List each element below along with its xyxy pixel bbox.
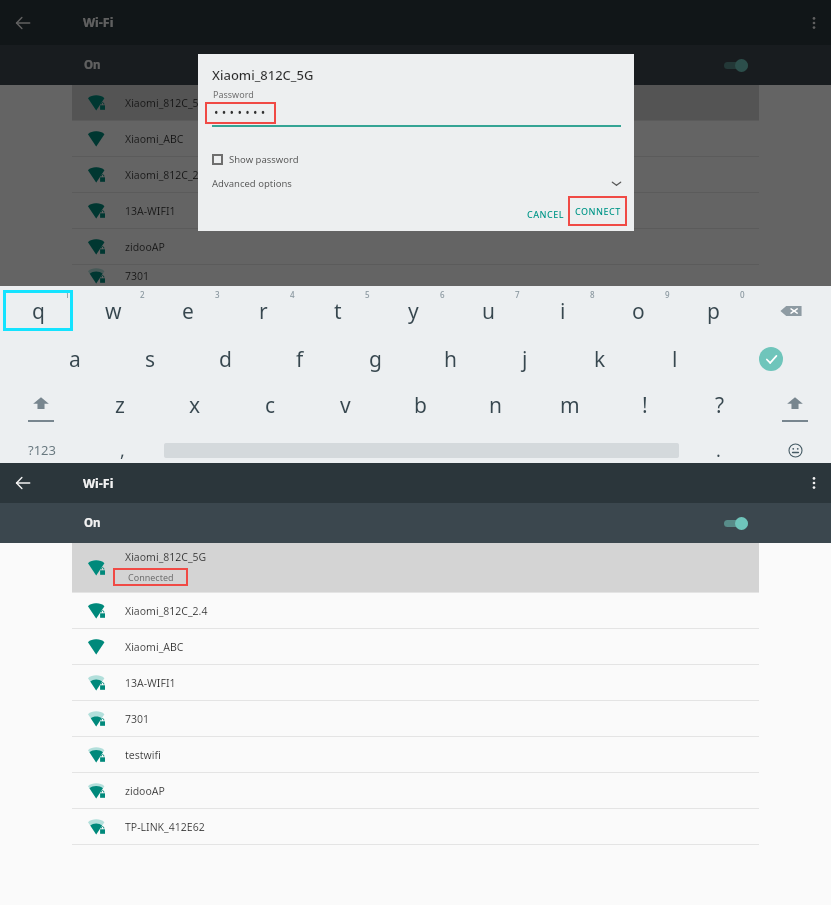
button[interactable]: z	[83, 382, 157, 428]
staticText: f	[296, 345, 304, 374]
staticText: 8	[590, 289, 595, 300]
button[interactable]: 13A-WIFI1	[72, 665, 759, 700]
button[interactable]: k	[563, 336, 637, 382]
button[interactable]: Shift	[763, 382, 827, 428]
staticText: c	[265, 391, 276, 420]
staticText: 7301	[125, 269, 150, 283]
staticText: ,	[120, 438, 125, 463]
staticText: CONNECT	[575, 205, 621, 217]
button[interactable]: j	[488, 336, 562, 382]
staticText: Wi-Fi	[83, 14, 114, 31]
button[interactable]: TP-LINK_412E62	[72, 809, 759, 844]
button[interactable]: CONNECT	[568, 196, 627, 226]
staticText: n	[489, 391, 502, 420]
button[interactable]: e	[151, 288, 225, 334]
button[interactable]: t	[301, 288, 375, 334]
button[interactable]: Emoji	[765, 431, 825, 469]
button[interactable]: Xiaomi_812C_5G	[72, 85, 759, 120]
button[interactable]: p	[676, 288, 750, 334]
staticText: ?123	[28, 441, 56, 459]
button[interactable]: zidooAP	[72, 229, 759, 264]
button[interactable]: w	[76, 288, 150, 334]
button[interactable]: g	[338, 336, 412, 382]
staticText: l	[672, 345, 678, 374]
button[interactable]: More options	[802, 11, 826, 35]
staticText: Connected	[128, 571, 174, 583]
button[interactable]: d	[188, 336, 262, 382]
staticText: 5	[365, 289, 370, 300]
button[interactable]: s	[113, 336, 187, 382]
button[interactable]: Show password	[212, 153, 299, 166]
staticText: zidooAP	[125, 240, 165, 254]
button[interactable]: i	[526, 288, 600, 334]
button[interactable]: Back	[11, 11, 35, 35]
button[interactable]: u	[451, 288, 525, 334]
staticText: m	[560, 391, 580, 420]
staticText: 3	[215, 289, 220, 300]
button[interactable]: 13A-WIFI1	[72, 193, 759, 228]
staticText: b	[414, 391, 427, 420]
button[interactable]: n	[458, 382, 532, 428]
staticText: .	[716, 438, 721, 463]
staticText: r	[259, 297, 268, 326]
button[interactable]: Xiaomi_812C_5G	[72, 543, 759, 592]
button[interactable]: Xiaomi_ABC	[72, 629, 759, 664]
button[interactable]: a	[38, 336, 112, 382]
button[interactable]: Shift	[9, 382, 73, 428]
button[interactable]: x	[158, 382, 232, 428]
staticText: u	[482, 297, 495, 326]
button[interactable]: CANCEL	[523, 199, 568, 229]
staticText: 0	[740, 289, 745, 300]
staticText: y	[408, 297, 419, 326]
button[interactable]: f	[263, 336, 337, 382]
button[interactable]: More options	[802, 471, 826, 495]
staticText: p	[707, 297, 720, 326]
button[interactable]: .	[688, 431, 748, 469]
staticText: Advanced options	[212, 177, 292, 190]
staticText: e	[182, 297, 194, 326]
button[interactable]: l	[638, 336, 712, 382]
staticText: Xiaomi_812C_2.4	[125, 604, 208, 618]
button[interactable]: ?	[683, 382, 757, 428]
staticText: Xiaomi_812C_5G	[125, 96, 207, 110]
button[interactable]: m	[533, 382, 607, 428]
button[interactable]: On	[0, 503, 831, 543]
other: Back	[16, 16, 30, 30]
button[interactable]: ,	[92, 431, 152, 469]
button[interactable]: Xiaomi_ABC	[72, 121, 759, 156]
button[interactable]: Backspace	[761, 288, 821, 334]
button[interactable]: y	[376, 288, 450, 334]
button[interactable]: r	[226, 288, 300, 334]
button[interactable]: c	[233, 382, 307, 428]
staticText: !	[642, 391, 648, 420]
button[interactable]: !	[608, 382, 682, 428]
button[interactable]: 7301	[72, 265, 759, 286]
staticText: 2	[140, 289, 145, 300]
staticText: ?	[715, 391, 725, 420]
button[interactable]: Back	[11, 471, 35, 495]
button[interactable]: Advanced options	[212, 177, 623, 190]
staticText: s	[145, 345, 156, 374]
staticText: 7	[515, 289, 520, 300]
staticText: 13A-WIFI1	[125, 676, 176, 690]
button[interactable]: testwifi	[72, 737, 759, 772]
staticText: k	[594, 345, 606, 374]
button[interactable]: ?123	[10, 431, 74, 469]
button[interactable]: b	[383, 382, 457, 428]
button[interactable]: Enter	[741, 336, 801, 382]
button[interactable]: h	[413, 336, 487, 382]
button[interactable]: o	[601, 288, 675, 334]
button[interactable]: v	[308, 382, 382, 428]
staticText: x	[189, 391, 201, 420]
button[interactable]: Xiaomi_812C_2.4	[72, 593, 759, 628]
other: More options	[808, 17, 820, 29]
staticText: j	[522, 345, 528, 374]
staticText: Xiaomi_812C_5G	[212, 66, 314, 84]
button[interactable]: q	[1, 288, 75, 334]
button[interactable]: Xiaomi_812C_2.4	[72, 157, 759, 192]
button[interactable]: 7301	[72, 701, 759, 736]
button[interactable]: On	[0, 45, 831, 85]
staticText: o	[632, 297, 645, 326]
button[interactable]: zidooAP	[72, 773, 759, 808]
